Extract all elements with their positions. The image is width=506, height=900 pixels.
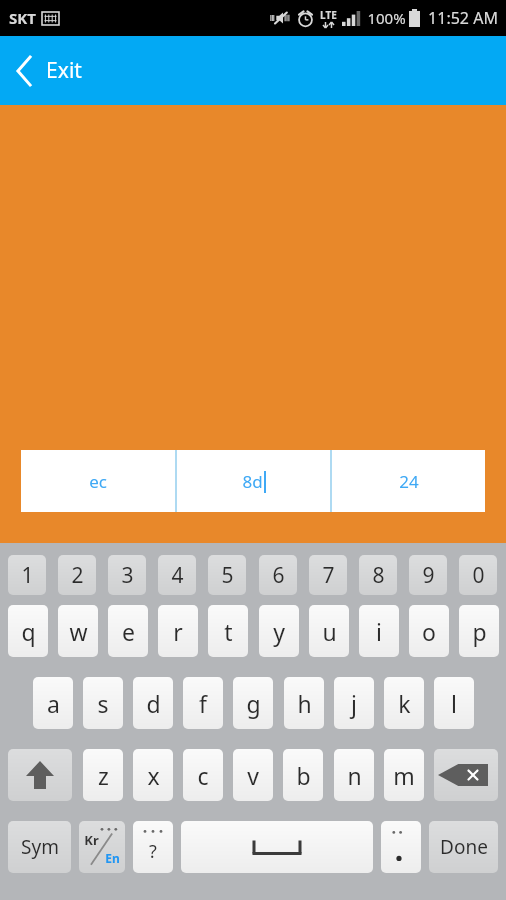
button[interactable]: Change language — [79, 821, 125, 873]
button[interactable]: Space — [181, 821, 373, 873]
button[interactable]: e — [108, 605, 148, 657]
staticText: 11:52 AM — [428, 7, 498, 29]
staticText: j — [351, 688, 357, 719]
button[interactable]: 1 — [8, 555, 46, 595]
staticText: ec — [89, 470, 107, 493]
button[interactable]: o — [409, 605, 449, 657]
staticText: p — [472, 616, 487, 647]
button[interactable]: 5 — [208, 555, 246, 595]
button[interactable]: a — [33, 677, 73, 729]
staticText: 9 — [422, 561, 435, 590]
staticText: t — [224, 616, 233, 647]
button[interactable]: f — [183, 677, 223, 729]
button[interactable]: Sym — [8, 821, 71, 873]
button[interactable]: n — [334, 749, 374, 801]
staticText: l — [451, 688, 457, 719]
button[interactable]: 24 — [332, 450, 485, 512]
staticText: y — [273, 616, 285, 647]
staticText: e — [122, 616, 135, 647]
staticText: q — [21, 616, 36, 647]
button[interactable]: m — [384, 749, 424, 801]
staticText: 1 — [21, 561, 34, 590]
staticText: w — [69, 616, 88, 647]
staticText: k — [398, 688, 411, 719]
button[interactable]: l — [434, 677, 474, 729]
staticText: Kr — [84, 831, 99, 849]
button[interactable]: x — [133, 749, 173, 801]
button[interactable]: 8d — [177, 450, 330, 512]
button[interactable]: Backspace — [434, 749, 498, 801]
button[interactable]: Exit — [0, 36, 106, 105]
staticText: v — [247, 760, 259, 791]
staticText: LTE — [320, 8, 337, 22]
staticText: 7 — [322, 561, 335, 590]
staticText: x — [147, 760, 160, 791]
staticText: 5 — [221, 561, 234, 590]
button[interactable]: 3 — [108, 555, 146, 595]
staticText: 8 — [372, 561, 385, 590]
staticText: n — [347, 760, 362, 791]
button[interactable]: 8 — [359, 555, 397, 595]
button[interactable]: 6 — [259, 555, 297, 595]
staticText: r — [173, 616, 183, 647]
button[interactable]: t — [208, 605, 248, 657]
button[interactable]: s — [83, 677, 123, 729]
staticText: 100% — [367, 8, 406, 28]
staticText: c — [197, 760, 209, 791]
button[interactable]: 7 — [309, 555, 347, 595]
button[interactable]: ec — [21, 450, 175, 512]
button[interactable]: d — [133, 677, 173, 729]
staticText: 2 — [71, 561, 84, 590]
staticText: 6 — [272, 561, 285, 590]
button[interactable]: 0 — [459, 555, 497, 595]
staticText: i — [376, 616, 382, 647]
staticText: g — [246, 688, 261, 719]
staticText: Sym — [21, 834, 59, 860]
staticText: a — [47, 688, 60, 719]
staticText: Exit — [46, 56, 82, 85]
staticText: 3 — [121, 561, 134, 590]
button[interactable]: k — [384, 677, 424, 729]
button[interactable]: u — [309, 605, 349, 657]
button[interactable]: b — [283, 749, 323, 801]
staticText: 0 — [472, 561, 485, 590]
staticText: Done — [440, 834, 488, 860]
staticText: m — [393, 760, 415, 791]
button[interactable]: v — [233, 749, 273, 801]
button[interactable]: q — [8, 605, 48, 657]
button[interactable]: Done — [429, 821, 498, 873]
staticText: En — [105, 850, 120, 866]
button[interactable]: Period — [381, 821, 421, 873]
button[interactable]: r — [158, 605, 198, 657]
staticText: f — [199, 688, 207, 719]
staticText: 8d — [242, 470, 263, 493]
button[interactable]: y — [259, 605, 299, 657]
staticText: 4 — [171, 561, 184, 590]
staticText: h — [297, 688, 312, 719]
staticText: ? — [149, 839, 157, 864]
staticText: z — [98, 760, 109, 791]
button[interactable]: Symbols — [133, 821, 173, 873]
staticText: s — [97, 688, 109, 719]
staticText: SKT — [9, 8, 36, 28]
button[interactable]: c — [183, 749, 223, 801]
button[interactable]: 2 — [58, 555, 96, 595]
button[interactable]: j — [334, 677, 374, 729]
button[interactable]: g — [233, 677, 273, 729]
button[interactable]: p — [459, 605, 499, 657]
button[interactable]: w — [58, 605, 98, 657]
staticText: b — [296, 760, 311, 791]
button[interactable]: 9 — [409, 555, 447, 595]
button[interactable]: z — [83, 749, 123, 801]
button[interactable]: 4 — [158, 555, 196, 595]
staticText: d — [146, 688, 161, 719]
button[interactable]: i — [359, 605, 399, 657]
staticText: u — [322, 616, 337, 647]
button[interactable]: h — [284, 677, 324, 729]
staticText: 24 — [399, 470, 419, 493]
staticText: o — [422, 616, 436, 647]
button[interactable]: Shift — [8, 749, 72, 801]
